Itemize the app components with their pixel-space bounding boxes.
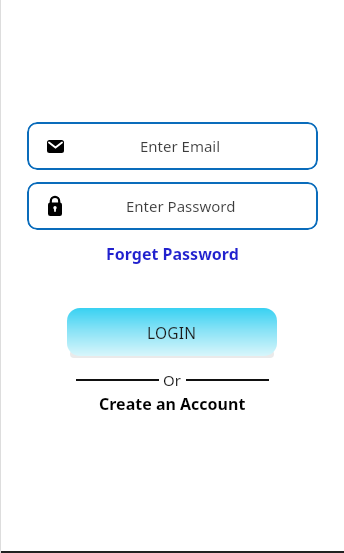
- button[interactable]: Enter Email: [27, 122, 318, 170]
- button[interactable]: Create an Account: [99, 393, 246, 415]
- staticText: Enter Email: [140, 136, 221, 156]
- staticText: Create an Account: [99, 393, 246, 415]
- staticText: Forget Password: [106, 243, 239, 265]
- button[interactable]: Enter Password: [27, 182, 318, 230]
- button[interactable]: LOGIN: [67, 308, 277, 356]
- staticText: Enter Password: [126, 196, 236, 216]
- staticText: Or: [163, 370, 181, 390]
- staticText: LOGIN: [147, 322, 197, 343]
- button[interactable]: Forget Password: [106, 243, 239, 265]
